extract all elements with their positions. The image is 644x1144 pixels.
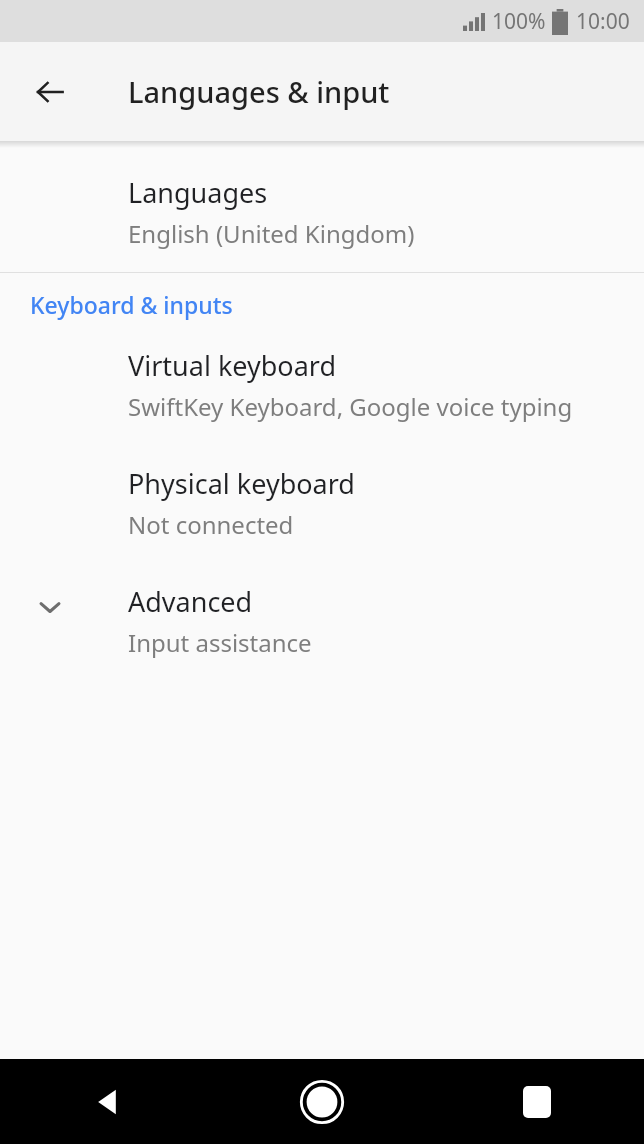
button[interactable]: Physical keyboard xyxy=(0,445,644,563)
staticText: Advanced xyxy=(128,583,253,620)
staticText: Input assistance xyxy=(128,626,312,659)
button[interactable]: Back xyxy=(22,64,78,120)
staticText: English (United Kingdom) xyxy=(128,217,415,250)
button[interactable]: Back xyxy=(0,1059,214,1144)
staticText: Languages xyxy=(128,174,268,211)
staticText: Languages & input xyxy=(128,72,390,111)
button[interactable]: Languages xyxy=(0,153,644,272)
staticText: 100% xyxy=(492,7,546,36)
button[interactable]: Advanced xyxy=(0,563,644,681)
staticText: Virtual keyboard xyxy=(128,347,337,384)
button[interactable]: Virtual keyboard xyxy=(0,335,644,445)
staticText: 10:00 xyxy=(576,7,630,36)
staticText: SwiftKey Keyboard, Google voice typing xyxy=(128,390,573,423)
button[interactable]: Recent apps xyxy=(429,1059,644,1144)
staticText: Not connected xyxy=(128,508,294,541)
button[interactable]: Home xyxy=(214,1059,429,1144)
staticText: Physical keyboard xyxy=(128,465,355,502)
staticText: Keyboard & inputs xyxy=(30,289,233,320)
